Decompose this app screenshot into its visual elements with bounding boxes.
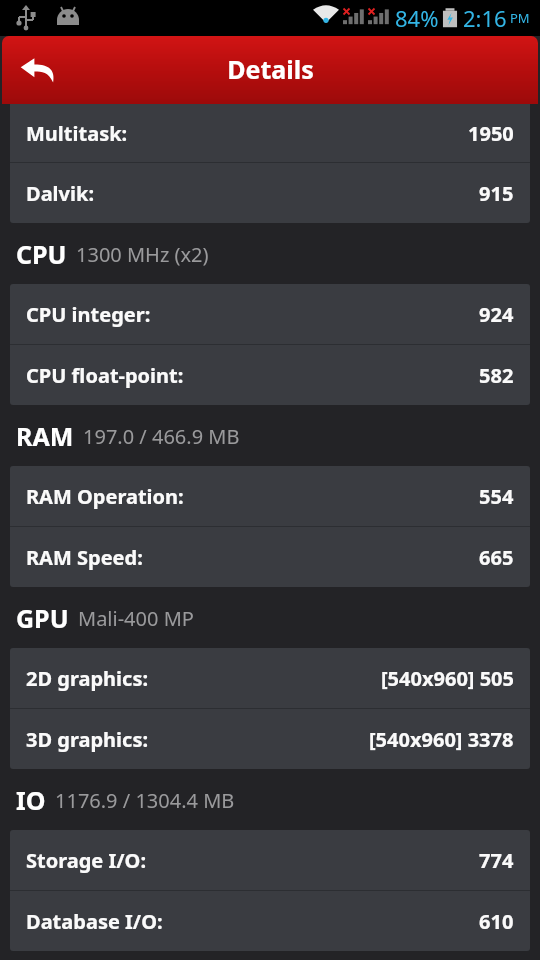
- staticText: 610: [479, 908, 514, 935]
- button[interactable]: RAM Operation:: [10, 466, 530, 526]
- staticText: Storage I/O:: [26, 847, 147, 874]
- staticText: CPU float-point:: [26, 362, 184, 389]
- staticText: 774: [479, 847, 514, 874]
- staticText: 582: [479, 362, 514, 389]
- staticText: 915: [479, 180, 514, 207]
- staticText: 197.0 / 466.9 MB: [83, 423, 240, 450]
- staticText: 2:16: [463, 3, 507, 33]
- staticText: GPU: [16, 601, 69, 635]
- staticText: 554: [479, 483, 514, 510]
- staticText: [540x960] 3378: [369, 726, 514, 753]
- staticText: Database I/O:: [26, 908, 163, 935]
- staticText: IO: [16, 783, 46, 817]
- button[interactable]: CPU integer:: [10, 284, 530, 344]
- button[interactable]: 3D graphics:: [10, 709, 530, 769]
- button[interactable]: Dalvik:: [10, 163, 530, 223]
- button[interactable]: 2D graphics:: [10, 648, 530, 708]
- staticText: Multitask:: [26, 120, 128, 147]
- button[interactable]: RAM Speed:: [10, 527, 530, 587]
- staticText: Mali-400 MP: [78, 605, 194, 632]
- staticText: [540x960] 505: [381, 665, 514, 692]
- staticText: RAM: [16, 419, 74, 453]
- staticText: CPU: [16, 237, 67, 271]
- staticText: PM: [510, 9, 530, 27]
- button[interactable]: Multitask:: [10, 104, 530, 162]
- staticText: Dalvik:: [26, 180, 94, 207]
- staticText: CPU integer:: [26, 301, 151, 328]
- staticText: RAM Speed:: [26, 544, 143, 571]
- staticText: 1950: [468, 120, 514, 147]
- staticText: 2D graphics:: [26, 665, 149, 692]
- staticText: 924: [479, 301, 514, 328]
- button[interactable]: Storage I/O:: [10, 830, 530, 890]
- staticText: 665: [479, 544, 514, 571]
- staticText: RAM Operation:: [26, 483, 184, 510]
- button[interactable]: CPU float-point:: [10, 345, 530, 405]
- button[interactable]: Back: [10, 42, 66, 98]
- staticText: 84%: [395, 3, 439, 33]
- staticText: Details: [227, 52, 314, 86]
- button[interactable]: Database I/O:: [10, 891, 530, 951]
- staticText: 1300 MHz (x2): [76, 241, 209, 268]
- staticText: 1176.9 / 1304.4 MB: [55, 787, 235, 814]
- staticText: 3D graphics:: [26, 726, 149, 753]
